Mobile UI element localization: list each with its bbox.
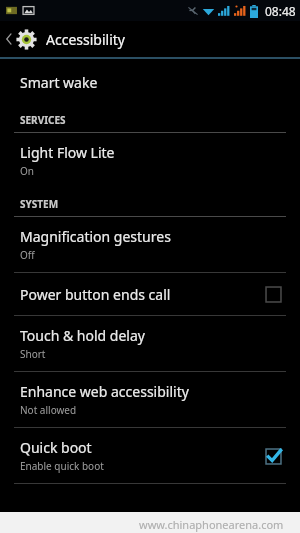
- button[interactable]: Enhance web accessibility: [0, 372, 300, 427]
- staticText: Enable quick boot: [20, 459, 104, 473]
- staticText: Touch & hold delay: [20, 326, 145, 345]
- staticText: SERVICES: [20, 113, 66, 127]
- staticText: 08:48: [265, 3, 296, 19]
- button[interactable]: Magnification gestures: [0, 217, 300, 272]
- button[interactable]: Power button ends call: [0, 273, 300, 315]
- button[interactable]: Light Flow Lite: [0, 133, 300, 188]
- staticText: Accessibility: [46, 30, 125, 49]
- staticText: Light Flow Lite: [20, 143, 115, 162]
- button[interactable]: Smart wake: [0, 59, 300, 104]
- staticText: www.chinaphonearena.com: [139, 517, 284, 532]
- staticText: Not allowed: [20, 403, 77, 417]
- staticText: On: [20, 164, 34, 178]
- button[interactable]: Quick boot: [0, 428, 300, 483]
- staticText: Off: [20, 248, 35, 262]
- staticText: Enhance web accessibility: [20, 382, 189, 401]
- staticText: Smart wake: [20, 73, 98, 92]
- staticText: Short: [20, 347, 46, 361]
- button[interactable]: Unchecked: [262, 283, 284, 305]
- staticText: SYSTEM: [20, 197, 59, 211]
- staticText: Magnification gestures: [20, 227, 171, 246]
- staticText: Quick boot: [20, 438, 92, 457]
- button[interactable]: Up, Accessibility: [0, 21, 300, 57]
- staticText: Power button ends call: [20, 285, 171, 304]
- button[interactable]: Touch & hold delay: [0, 316, 300, 371]
- button[interactable]: Checked: [262, 445, 284, 467]
